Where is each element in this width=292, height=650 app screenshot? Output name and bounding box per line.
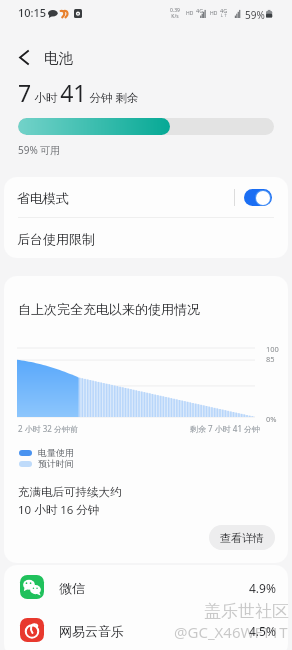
staticText: 10:15 <box>18 5 47 20</box>
staticText: 4G <box>196 7 204 14</box>
staticText: 剩余 7 小时 41 分钟 <box>190 423 261 434</box>
button[interactable]: 微信 <box>4 565 288 608</box>
button[interactable]: 网易云音乐 <box>4 608 288 650</box>
button[interactable]: 后台使用限制 <box>4 218 288 258</box>
staticText: 预计时间 <box>38 458 74 469</box>
staticText: HD <box>186 10 194 17</box>
staticText: 4G <box>220 7 228 14</box>
button[interactable]: Back <box>0 40 44 73</box>
staticText: HD <box>210 10 218 17</box>
button[interactable]: 省电模式 <box>4 177 288 217</box>
button[interactable]: Power saving mode toggle <box>244 189 272 206</box>
staticText: 7 小时 41 分钟 剩余 <box>18 77 139 108</box>
button[interactable]: Back <box>0 40 292 73</box>
staticText: 后台使用限制 <box>17 231 95 247</box>
staticText: 微信 <box>59 580 85 596</box>
staticText: 电池 <box>44 49 73 67</box>
staticText: 电量使用 <box>38 447 74 458</box>
staticText: 4.9% <box>249 580 276 596</box>
staticText: 59% 可用 <box>18 143 61 157</box>
staticText: 59% <box>245 8 265 22</box>
staticText: 4.5% <box>249 623 276 639</box>
staticText: 100 <box>266 344 279 354</box>
staticText: 10 小时 16 分钟 <box>18 502 100 518</box>
staticText: 网易云音乐 <box>59 623 124 639</box>
staticText: 省电模式 <box>17 190 69 206</box>
staticText: ↓↑ <box>220 13 228 18</box>
staticText: 0% <box>266 414 277 424</box>
staticText: 0.39 K/s <box>170 7 180 20</box>
button[interactable]: 查看详情 <box>209 525 275 550</box>
staticText: 85 <box>266 354 275 364</box>
staticText: @GC_X46WFT1T <box>174 622 288 642</box>
staticText: 盖乐世社区 <box>204 601 289 622</box>
staticText: 充满电后可持续大约 <box>18 485 122 499</box>
staticText: 2 小时 32 分钟前 <box>18 423 78 434</box>
staticText: 自上次完全充电以来的使用情况 <box>18 301 200 317</box>
staticText: 查看详情 <box>220 531 264 545</box>
